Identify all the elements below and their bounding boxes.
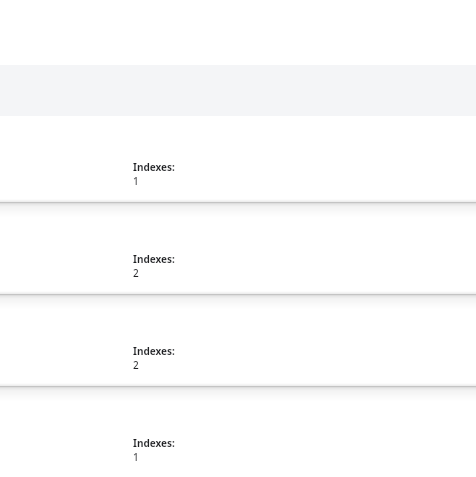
button[interactable]: Indexes: [0, 294, 476, 386]
staticText: Indexes: [133, 160, 175, 174]
button[interactable]: Indexes: [0, 116, 476, 202]
staticText: 2 [133, 358, 139, 372]
button[interactable]: Indexes: [0, 386, 476, 471]
staticText: Indexes: [133, 252, 175, 266]
staticText: 1 [133, 450, 139, 464]
button[interactable]: Indexes: [0, 202, 476, 294]
staticText: 2 [133, 266, 139, 280]
staticText: Indexes: [133, 344, 175, 358]
staticText: 1 [133, 174, 139, 188]
staticText: Indexes: [133, 436, 175, 450]
